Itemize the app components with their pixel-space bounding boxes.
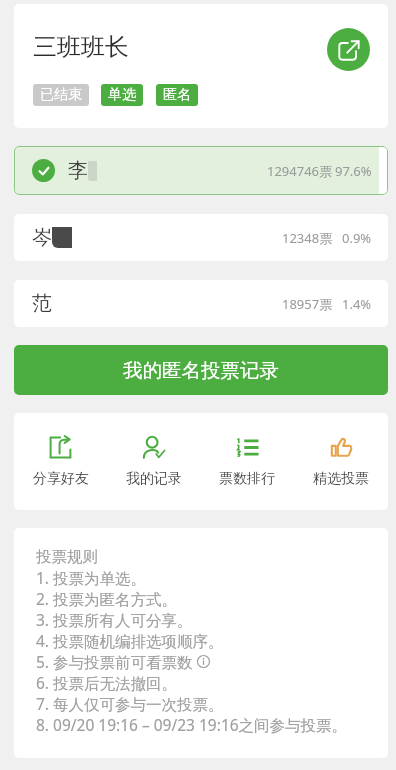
staticText: 三班班长 (33, 32, 129, 62)
button[interactable]: 分享好友 (14, 413, 107, 510)
button[interactable]: 单选 (101, 84, 143, 106)
staticText: 7. 每人仅可参与一次投票。 (36, 693, 224, 714)
button[interactable]: 岑 (14, 214, 388, 261)
staticText: 2. 投票为匿名方式。 (36, 588, 178, 609)
staticText: 投票规则 (36, 547, 98, 567)
staticText: 范 (32, 291, 52, 316)
staticText: 分享好友 (33, 470, 89, 488)
staticText: 97.6% (335, 162, 372, 180)
staticText: 岑 (32, 225, 52, 250)
staticText: 6. 投票后无法撤回。 (36, 672, 178, 693)
button[interactable]: 匿名 (156, 84, 198, 106)
staticText: 我的记录 (126, 470, 182, 488)
button[interactable]: 我的匿名投票记录 (14, 345, 388, 395)
staticText: 1294746票 (267, 162, 333, 180)
button[interactable]: 票数排行 (200, 413, 294, 510)
button[interactable]: Share (327, 28, 370, 71)
staticText: 李 (68, 158, 88, 183)
staticText: 0.9% (342, 229, 372, 247)
button[interactable]: 精选投票 (294, 413, 388, 510)
staticText: 1.4% (342, 295, 372, 313)
staticText: 已结束 (40, 86, 82, 104)
button[interactable]: 范 (14, 280, 388, 327)
staticText: 4. 投票随机编排选项顺序。 (36, 630, 224, 651)
staticText: 精选投票 (313, 470, 369, 488)
staticText: 匿名 (163, 86, 191, 104)
staticText: 单选 (108, 86, 136, 104)
staticText: 票数排行 (219, 470, 275, 488)
staticText: 3. 投票所有人可分享。 (36, 609, 193, 630)
staticText: 18957票 (282, 295, 333, 313)
button[interactable]: 李 (14, 146, 388, 195)
button[interactable]: 已结束 (33, 84, 89, 106)
staticText: 1. 投票为单选。 (36, 567, 147, 588)
staticText: 12348票 (282, 229, 333, 247)
staticText: 8. 09/20 19:16 – 09/23 19:16之间参与投票。 (36, 714, 348, 735)
button[interactable]: 我的记录 (107, 413, 200, 510)
staticText: 5. 参与投票前可看票数 (36, 651, 197, 672)
staticText: 我的匿名投票记录 (123, 358, 279, 383)
